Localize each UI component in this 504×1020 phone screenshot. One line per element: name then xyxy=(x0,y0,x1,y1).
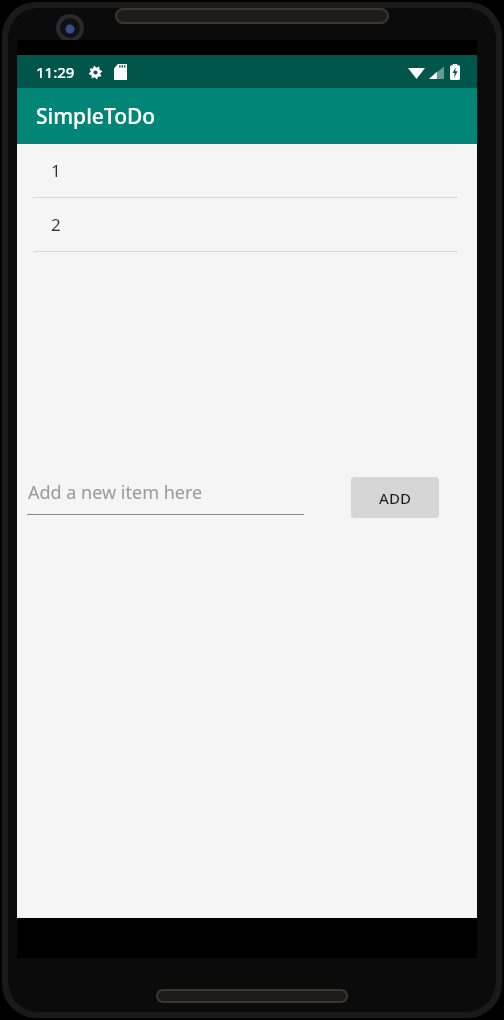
staticText: ADD xyxy=(379,488,411,508)
staticText: 2 xyxy=(51,213,61,236)
button[interactable]: Add a new item here xyxy=(27,480,304,515)
button[interactable]: Add item xyxy=(351,477,439,518)
staticText: SimpleToDo xyxy=(36,102,156,131)
staticText: 11:29 xyxy=(36,62,75,82)
staticText: 1 xyxy=(51,159,61,182)
button[interactable]: 1 xyxy=(17,144,477,198)
button[interactable]: 2 xyxy=(17,198,477,252)
staticText: Add a new item here xyxy=(28,480,203,505)
